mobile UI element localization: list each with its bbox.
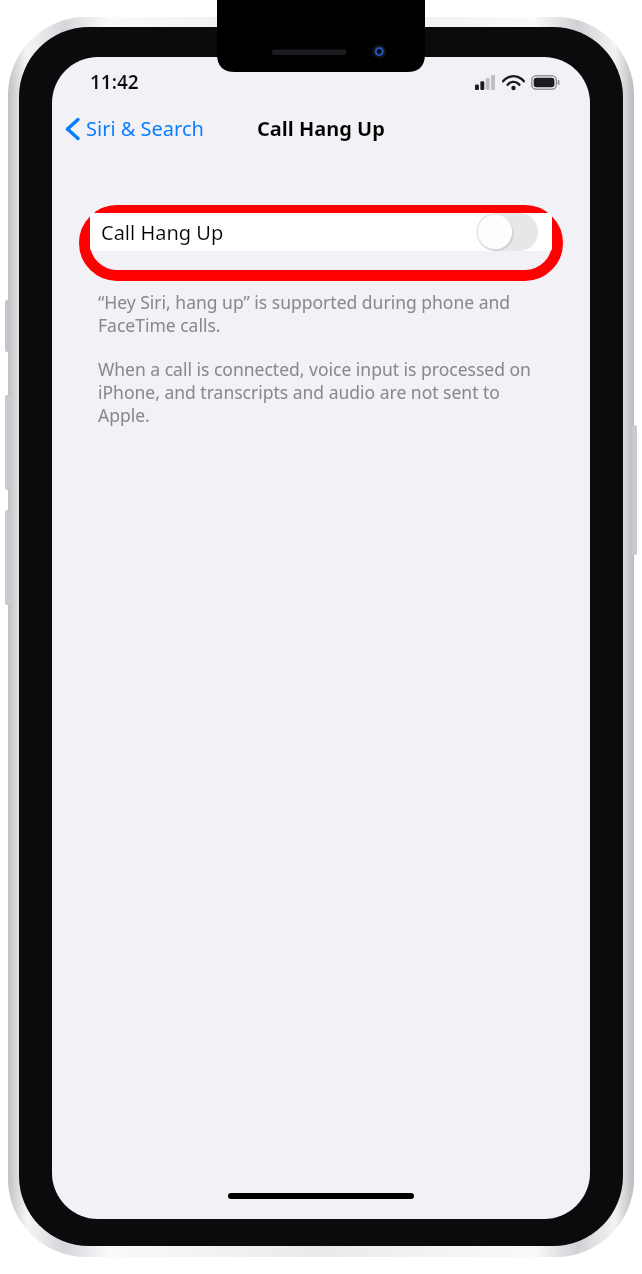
staticText: Call Hang Up <box>101 219 224 246</box>
button[interactable]: Siri & Search <box>52 109 214 148</box>
staticText: “Hey Siri, hang up” is supported during … <box>98 290 550 337</box>
staticText: 11:42 <box>90 69 139 95</box>
button[interactable]: Call Hang Up toggle, off <box>476 213 538 251</box>
staticText: When a call is connected, voice input is… <box>98 357 550 427</box>
staticText: Call Hang Up <box>257 115 385 142</box>
staticText: Siri & Search <box>86 115 204 142</box>
button[interactable]: Call Hang Up <box>90 213 552 251</box>
